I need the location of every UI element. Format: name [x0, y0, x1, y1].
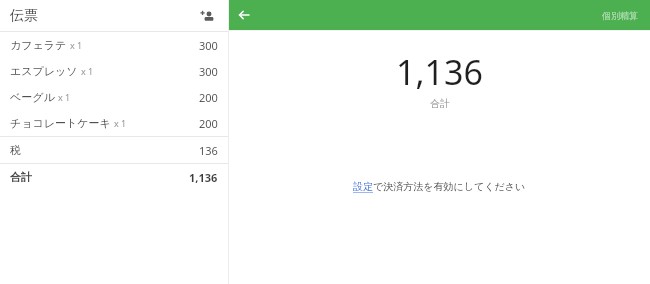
staticText: 300 [199, 38, 218, 53]
staticText: チョコレートケーキ [10, 116, 111, 130]
staticText: x 1 [114, 117, 127, 129]
staticText: 1,136 [189, 170, 218, 185]
staticText: 300 [199, 64, 218, 79]
staticText: x 1 [70, 39, 83, 51]
staticText: x 1 [58, 91, 71, 103]
staticText: 1,136 [396, 49, 483, 95]
staticText: エスプレッソ [10, 64, 78, 78]
button[interactable]: 税 [0, 137, 228, 163]
staticText: で決済方法を有効にしてください [373, 180, 526, 193]
button[interactable]: ベーグル [0, 84, 228, 110]
staticText: 個別精算 [602, 10, 638, 21]
button[interactable]: Add person [194, 3, 220, 29]
button[interactable]: 設定 [353, 180, 526, 193]
button[interactable]: 個別精算 [590, 4, 650, 27]
staticText: 税 [10, 143, 21, 157]
staticText: 200 [199, 116, 218, 131]
staticText: 合計 [10, 170, 32, 184]
button[interactable]: Back [229, 0, 259, 30]
staticText: 設定 [353, 180, 373, 193]
button[interactable]: チョコレートケーキ [0, 110, 228, 136]
staticText: ベーグル [10, 90, 55, 104]
staticText: 136 [199, 143, 218, 158]
staticText: カフェラテ [10, 38, 67, 52]
staticText: 伝票 [10, 7, 38, 25]
staticText: x 1 [81, 65, 94, 77]
button[interactable]: カフェラテ [0, 32, 228, 58]
staticText: 合計 [430, 97, 450, 110]
staticText: 200 [199, 90, 218, 105]
button[interactable]: 合計 [0, 164, 228, 190]
button[interactable]: エスプレッソ [0, 58, 228, 84]
